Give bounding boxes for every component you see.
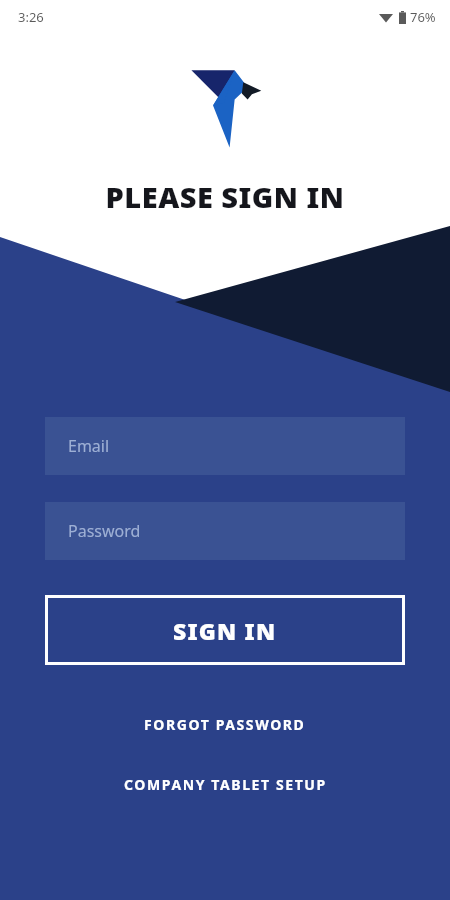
staticText: SIGN IN bbox=[173, 615, 277, 646]
staticText: FORGOT PASSWORD bbox=[144, 715, 306, 734]
staticText: 76% bbox=[410, 8, 436, 26]
staticText: Email bbox=[68, 435, 110, 457]
button[interactable]: COMPANY TABLET SETUP bbox=[45, 765, 405, 803]
button[interactable]: FORGOT PASSWORD bbox=[45, 705, 405, 743]
button[interactable]: SIGN IN bbox=[45, 595, 405, 665]
staticText: Password bbox=[68, 520, 141, 542]
button[interactable]: Password bbox=[45, 502, 405, 560]
staticText: PLEASE SIGN IN bbox=[0, 177, 450, 216]
staticText: 3:26 bbox=[18, 8, 44, 26]
button[interactable]: Email bbox=[45, 417, 405, 475]
staticText: COMPANY TABLET SETUP bbox=[124, 775, 327, 794]
